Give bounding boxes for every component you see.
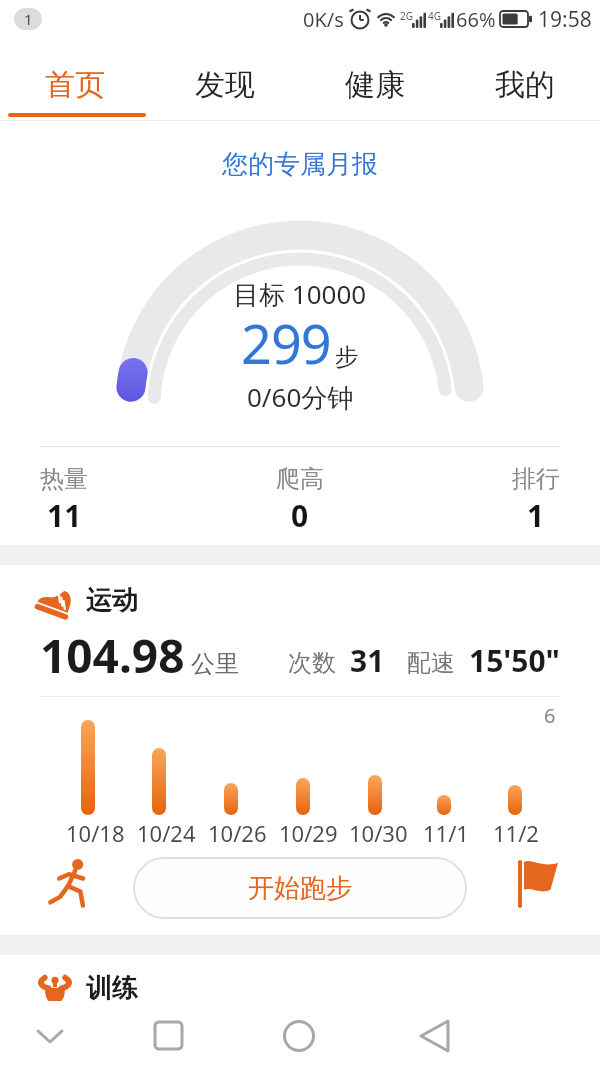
staticText: 排行 <box>512 464 560 494</box>
staticText: 1 <box>24 9 33 29</box>
button[interactable]: 0 <box>240 495 360 536</box>
staticText: 爬高 <box>276 464 324 494</box>
button[interactable]: 您的专属月报 <box>222 148 378 181</box>
staticText: 15'50" <box>469 640 560 681</box>
button[interactable] <box>0 1006 150 1067</box>
staticText: 31 <box>350 640 385 681</box>
staticText: 2G <box>400 9 413 23</box>
button[interactable]: 训练 <box>86 972 138 1005</box>
staticText: 11 <box>47 495 82 536</box>
staticText: 10/18 <box>66 818 125 848</box>
button[interactable]: 开始跑步 <box>133 857 467 919</box>
staticText: 6 <box>544 702 556 729</box>
button[interactable]: 运动 <box>86 584 138 617</box>
staticText: 健康 <box>345 66 405 104</box>
staticText: 开始跑步 <box>248 872 352 905</box>
button[interactable]: 我的 <box>450 55 600 115</box>
staticText: 0 <box>291 495 309 536</box>
staticText: 我的 <box>495 66 555 104</box>
button[interactable] <box>46 858 90 912</box>
staticText: 0/60分钟 <box>247 379 354 415</box>
staticText: 104.98 <box>40 624 185 687</box>
staticText: 配速 <box>407 648 455 678</box>
button[interactable] <box>300 1006 450 1067</box>
staticText: 11/1 <box>423 818 469 848</box>
staticText: 10/29 <box>279 818 338 848</box>
staticText: 66% <box>456 6 496 33</box>
button[interactable] <box>516 860 558 908</box>
staticText: 19:58 <box>538 5 592 34</box>
staticText: 10/24 <box>137 818 196 848</box>
staticText: 次数 <box>288 648 336 678</box>
button[interactable]: 发现 <box>150 55 300 115</box>
staticText: 1 <box>527 495 545 536</box>
staticText: 首页 <box>45 66 105 104</box>
staticText: 发现 <box>195 66 255 104</box>
staticText: 299 <box>241 306 331 380</box>
staticText: 11/2 <box>493 818 539 848</box>
staticText: 公里 <box>191 649 239 679</box>
button[interactable] <box>150 1006 300 1067</box>
staticText: 10/26 <box>208 818 267 848</box>
button[interactable]: 健康 <box>300 55 450 115</box>
button[interactable]: 11 <box>4 495 124 536</box>
staticText: 0K/s <box>303 6 344 33</box>
staticText: 10/30 <box>349 818 408 848</box>
staticText: 热量 <box>40 464 88 494</box>
staticText: 目标 10000 <box>233 276 367 312</box>
button[interactable]: 首页 <box>0 55 150 115</box>
staticText: 4G <box>428 9 441 23</box>
button[interactable]: 1 <box>476 495 596 536</box>
staticText: 步 <box>335 342 359 372</box>
